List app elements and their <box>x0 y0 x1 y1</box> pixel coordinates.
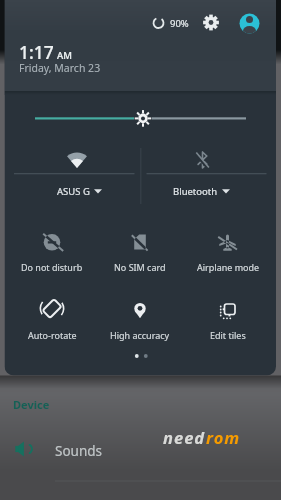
staticText: Device <box>13 397 50 412</box>
staticText: ASUS G <box>57 185 90 198</box>
staticText: No SIM card <box>114 261 166 273</box>
button[interactable]: High accuracy <box>95 285 185 345</box>
button[interactable]: Do not disturb <box>7 215 97 277</box>
button[interactable]: Auto-rotate <box>7 285 97 345</box>
button[interactable]: Sounds <box>5 433 276 481</box>
button[interactable]: ASUS G <box>19 140 139 205</box>
button[interactable]: Bluetooth <box>141 140 261 205</box>
staticText: rom <box>206 426 241 448</box>
staticText: Bluetooth <box>173 185 218 198</box>
staticText: AM <box>57 49 72 62</box>
staticText: Auto-rotate <box>28 329 77 341</box>
staticText: Do not disturb <box>21 261 83 273</box>
button[interactable]: Edit tiles <box>183 285 273 345</box>
button[interactable]: Airplane mode <box>183 215 273 277</box>
staticText: need <box>163 426 206 448</box>
staticText: Edit tiles <box>210 329 246 341</box>
staticText: Friday, March 23 <box>19 61 101 75</box>
button[interactable]: No SIM card <box>95 215 185 277</box>
button[interactable] <box>239 13 260 34</box>
button[interactable] <box>200 11 222 34</box>
staticText: High accuracy <box>110 329 170 341</box>
staticText: 90% <box>170 17 189 30</box>
button[interactable] <box>28 104 253 132</box>
staticText: 1:17 <box>19 40 54 64</box>
staticText: Airplane mode <box>197 261 260 273</box>
staticText: Sounds <box>55 442 103 460</box>
